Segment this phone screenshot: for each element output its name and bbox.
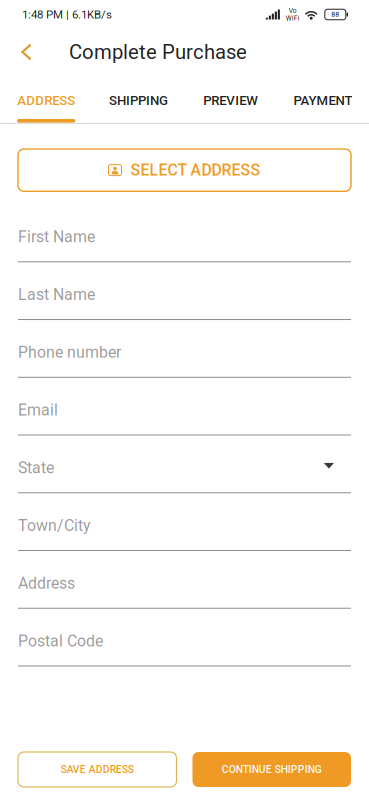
staticText: First Name	[18, 227, 95, 246]
staticText: SELECT ADDRESS	[130, 161, 260, 179]
staticText: Address	[18, 574, 75, 592]
staticText: SAVE ADDRESS	[61, 763, 134, 775]
button[interactable]: SELECT ADDRESS	[18, 149, 351, 191]
staticText: Email	[18, 401, 58, 419]
staticText: Vo	[289, 7, 297, 15]
staticText: 88	[331, 10, 339, 18]
button[interactable]: SAVE ADDRESS	[18, 752, 176, 787]
staticText: Last Name	[18, 285, 95, 304]
staticText: Town/City	[18, 516, 91, 535]
button[interactable]: ADDRESS	[0, 82, 92, 124]
staticText: Postal Code	[18, 632, 103, 650]
staticText: SHIPPING	[109, 93, 168, 108]
staticText: ADDRESS	[17, 93, 75, 108]
staticText: 1:48 PM | 6.1KB/s	[22, 8, 112, 21]
staticText: PAYMENT	[293, 93, 352, 108]
button[interactable]: CONTINUE SHIPPING	[192, 752, 351, 787]
button[interactable]: Back	[0, 29, 47, 82]
button[interactable]: SHIPPING	[92, 82, 184, 124]
staticText: PREVIEW	[203, 93, 258, 108]
button[interactable]: PREVIEW	[184, 82, 277, 124]
staticText: Phone number	[18, 343, 121, 362]
staticText: Complete Purchase	[69, 40, 247, 64]
button[interactable]: PAYMENT	[277, 82, 369, 124]
staticText: State	[18, 458, 54, 477]
staticText: WiFi	[286, 14, 300, 22]
staticText: CONTINUE SHIPPING	[222, 763, 322, 775]
